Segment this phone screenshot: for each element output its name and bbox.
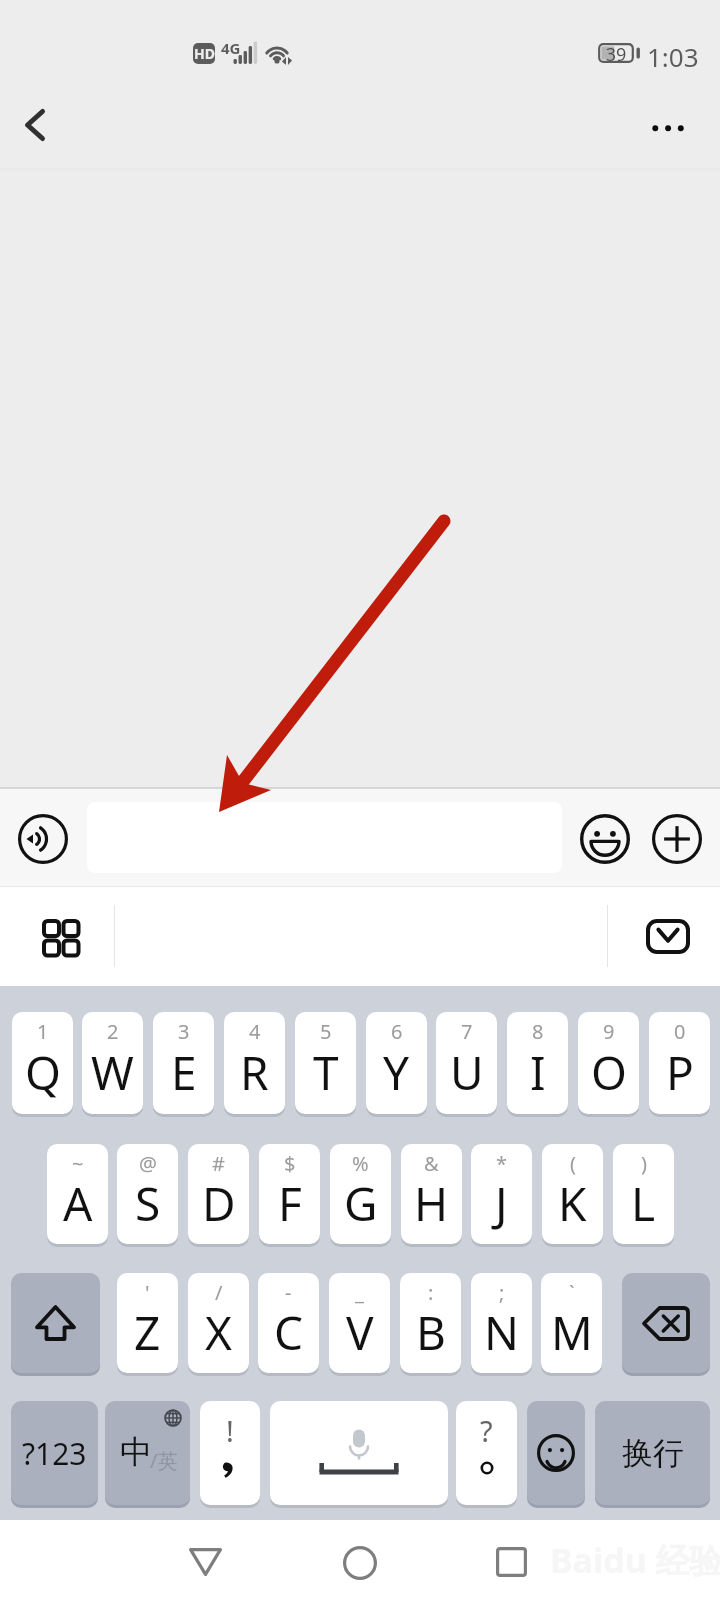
button[interactable]: Back — [170, 1530, 242, 1594]
staticText: C — [274, 1301, 304, 1364]
button[interactable]: I — [507, 1012, 568, 1117]
button[interactable]: L — [613, 1144, 674, 1247]
staticText: : — [428, 1279, 434, 1306]
staticText: * — [496, 1150, 508, 1177]
staticText: H — [414, 1172, 449, 1235]
button[interactable]: B — [400, 1273, 461, 1376]
staticText: @ — [139, 1150, 157, 1177]
staticText: T — [313, 1041, 339, 1104]
staticText: J — [495, 1172, 508, 1235]
button[interactable]: W — [82, 1012, 143, 1117]
button[interactable]: O — [578, 1012, 639, 1117]
staticText: % — [352, 1150, 369, 1177]
staticText: $ — [284, 1150, 296, 1177]
button[interactable]: Q — [12, 1012, 73, 1117]
staticText: 中 — [120, 1432, 152, 1472]
staticText: Q — [25, 1041, 61, 1104]
button[interactable]: More options — [632, 92, 706, 170]
button[interactable]: K — [542, 1144, 603, 1247]
button[interactable]: Space — [270, 1401, 448, 1508]
staticText: N — [484, 1301, 519, 1364]
staticText: O — [591, 1041, 627, 1104]
staticText: 9 — [603, 1018, 615, 1045]
staticText: 4G — [221, 38, 241, 58]
button[interactable]: A — [47, 1144, 108, 1247]
button[interactable]: Recent apps — [476, 1530, 548, 1594]
button[interactable]: Home — [324, 1530, 396, 1594]
button[interactable]: Hide keyboard — [634, 903, 702, 969]
button[interactable]: Z — [117, 1273, 178, 1376]
button[interactable]: J — [471, 1144, 532, 1247]
staticText: ! — [226, 1411, 234, 1450]
staticText: B — [416, 1301, 446, 1364]
staticText: 2 — [107, 1018, 119, 1045]
staticText: X — [205, 1301, 232, 1364]
staticText: I — [530, 1041, 546, 1104]
staticText: ? — [480, 1411, 493, 1450]
staticText: /英 — [150, 1447, 178, 1474]
button[interactable]: U — [436, 1012, 497, 1117]
button[interactable]: Y — [366, 1012, 427, 1117]
button[interactable]: Period — [456, 1401, 517, 1508]
staticText: ; — [499, 1279, 505, 1306]
staticText: ` — [569, 1279, 575, 1306]
button[interactable]: P — [649, 1012, 710, 1117]
staticText: Z — [134, 1301, 161, 1364]
button[interactable]: More functions — [649, 811, 705, 867]
staticText: 3 — [178, 1018, 190, 1045]
staticText: W — [91, 1041, 134, 1104]
staticText: G — [344, 1172, 378, 1235]
button[interactable]: S — [117, 1144, 178, 1247]
button[interactable]: Emoji — [527, 1401, 585, 1508]
staticText: 换行 — [622, 1434, 684, 1473]
button[interactable]: D — [188, 1144, 249, 1247]
staticText: ' — [145, 1279, 150, 1306]
staticText: 1:03 — [647, 39, 699, 74]
button[interactable]: Keyboard apps — [26, 901, 96, 971]
button[interactable]: E — [153, 1012, 214, 1117]
staticText: ?123 — [22, 1433, 87, 1474]
staticText: _ — [355, 1279, 364, 1306]
button[interactable]: G — [330, 1144, 391, 1247]
button[interactable]: Switch language — [105, 1401, 190, 1508]
staticText: S — [135, 1172, 161, 1235]
staticText: # — [212, 1150, 225, 1177]
button[interactable]: N — [471, 1273, 532, 1376]
staticText: D — [202, 1172, 236, 1235]
staticText: ( — [570, 1150, 576, 1177]
staticText: 39 — [599, 42, 633, 67]
staticText: Baidu 经验 — [550, 1537, 720, 1583]
button[interactable]: Comma — [200, 1401, 260, 1508]
staticText: HD — [194, 44, 215, 63]
button[interactable]: F — [259, 1144, 320, 1247]
button[interactable]: V — [329, 1273, 390, 1376]
button[interactable]: C — [258, 1273, 319, 1376]
staticText: A — [63, 1172, 93, 1235]
button[interactable]: Shift — [11, 1273, 100, 1376]
staticText: E — [171, 1041, 197, 1104]
button[interactable]: M — [541, 1273, 602, 1376]
button[interactable]: Back — [6, 92, 66, 170]
button[interactable]: X — [188, 1273, 249, 1376]
staticText: K — [558, 1172, 587, 1235]
button[interactable]: H — [401, 1144, 462, 1247]
button[interactable]: 换行 — [595, 1401, 710, 1508]
button[interactable]: Emoji — [577, 811, 633, 867]
staticText: ~ — [72, 1150, 84, 1177]
button[interactable]: R — [224, 1012, 285, 1117]
button[interactable]: Voice input — [15, 811, 71, 867]
button[interactable]: T — [295, 1012, 356, 1117]
button[interactable] — [87, 802, 562, 873]
staticText: 7 — [461, 1018, 473, 1045]
button[interactable]: Backspace — [622, 1273, 710, 1376]
staticText: 4 — [249, 1018, 261, 1045]
staticText: F — [278, 1172, 302, 1235]
button[interactable]: ?123 — [11, 1401, 98, 1508]
staticText: U — [450, 1041, 484, 1104]
staticText: 1 — [37, 1018, 49, 1045]
staticText: 8 — [532, 1018, 544, 1045]
staticText: 5 — [320, 1018, 332, 1045]
staticText: L — [631, 1172, 656, 1235]
staticText: P — [666, 1041, 694, 1104]
staticText: / — [215, 1279, 223, 1306]
